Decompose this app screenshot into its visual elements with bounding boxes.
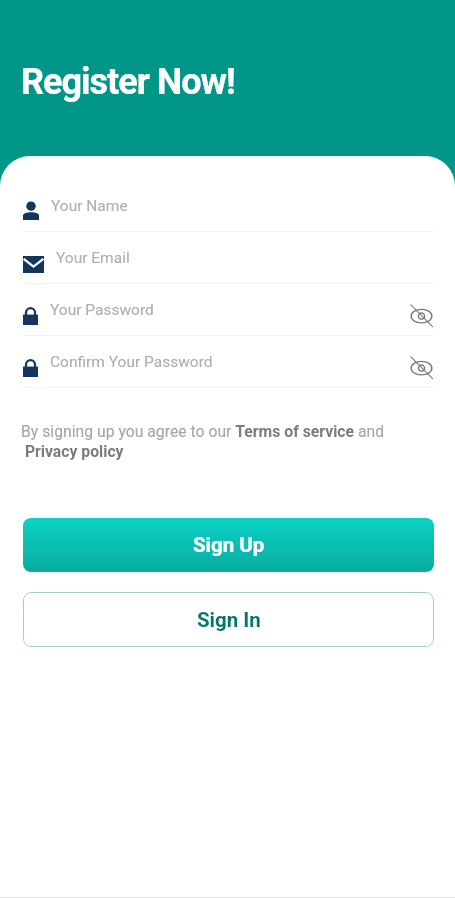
button[interactable]: Your Name bbox=[22, 180, 433, 231]
staticText: Register Now! bbox=[21, 61, 235, 103]
button[interactable]: Sign In bbox=[23, 592, 434, 647]
staticText: Your Email bbox=[56, 249, 130, 267]
button[interactable]: Your Password bbox=[22, 284, 433, 335]
staticText: Your Name bbox=[51, 197, 128, 215]
button[interactable]: Confirm Your Password bbox=[22, 336, 433, 387]
button[interactable]: Toggle password visibility bbox=[409, 302, 433, 326]
button[interactable]: Sign Up bbox=[23, 518, 434, 572]
button[interactable]: Toggle password visibility bbox=[409, 354, 433, 378]
button[interactable]: Your Email bbox=[22, 232, 433, 283]
staticText: Your Password bbox=[50, 301, 154, 319]
staticText: Sign In bbox=[197, 608, 261, 632]
staticText: By signing up you agree to our Terms of … bbox=[21, 422, 385, 461]
staticText: Confirm Your Password bbox=[50, 353, 213, 371]
staticText: Sign Up bbox=[193, 533, 265, 557]
